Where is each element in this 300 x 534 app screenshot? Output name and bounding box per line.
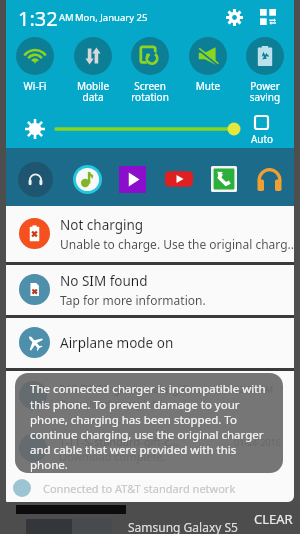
staticText: The connected charger is incompatible wi…: [30, 381, 272, 472]
button[interactable]: Mobile data: [64, 33, 122, 102]
button[interactable]: Music: [66, 158, 108, 200]
staticText: Power saving: [236, 79, 294, 104]
staticText: Mute: [179, 79, 237, 93]
staticText: Not charging: [60, 216, 144, 234]
staticText: CLEAR: [254, 510, 293, 528]
button[interactable]: Settings: [220, 3, 248, 31]
staticText: 01-24-2016: [234, 436, 281, 448]
button[interactable]: Brightness: [52, 118, 242, 140]
staticText: Samsung Galaxy S5: [128, 519, 238, 534]
staticText: 12:54 AM: [234, 383, 274, 395]
button[interactable]: Auto brightness: [246, 110, 278, 146]
staticText: No SIM found: [60, 272, 148, 290]
button[interactable]: CLEAR: [248, 508, 299, 530]
staticText: Mobile data: [64, 79, 122, 104]
button[interactable]: 213-T1-13-guatemala-gift-c...: [6, 371, 294, 421]
button[interactable]: Video player: [111, 158, 153, 200]
staticText: Auto: [246, 132, 278, 146]
staticText: Download complete.: [59, 396, 166, 411]
staticText: Wi-Fi: [6, 79, 64, 93]
button[interactable]: No SIM found: [6, 265, 294, 315]
button[interactable]: 1-T1-S-standard-gift-c...: [6, 424, 294, 474]
button[interactable]: YouTube: [158, 158, 200, 200]
button[interactable]: Airplane mode on: [6, 318, 294, 368]
staticText: Mon, January 25: [75, 11, 148, 24]
staticText: 213-T1-13-guatemala-gift-c...: [59, 381, 207, 396]
button[interactable]: Wi-Fi: [6, 33, 64, 102]
button[interactable]: Mute: [179, 33, 237, 102]
button[interactable]: Screen rotation: [121, 33, 179, 102]
staticText: Unable to charge. Use the original charg…: [60, 236, 294, 252]
staticText: AM: [59, 11, 74, 24]
button[interactable]: Not charging: [6, 206, 294, 262]
staticText: Tap for more information.: [60, 292, 206, 308]
staticText: 1-T1-S-standard-gift-c...: [59, 434, 179, 449]
button[interactable]: Phone: [203, 158, 245, 200]
button[interactable]: Connected to AT&T standard network: [6, 477, 294, 499]
staticText: Download complete.: [59, 449, 166, 464]
button[interactable]: Edit quick settings: [254, 3, 282, 31]
staticText: Screen rotation: [121, 79, 179, 104]
button[interactable]: Music player: [14, 158, 56, 200]
staticText: 1:32: [18, 5, 58, 32]
staticText: Connected to AT&T standard network: [43, 481, 236, 496]
button[interactable]: Power saving: [236, 33, 294, 102]
staticText: Airplane mode on: [60, 334, 174, 352]
button[interactable]: Audio: [248, 158, 290, 200]
